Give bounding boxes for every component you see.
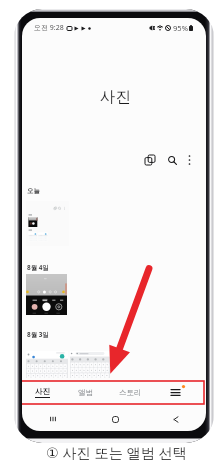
button[interactable]: Recents [46,412,60,426]
button[interactable] [70,351,110,378]
button[interactable] [26,201,69,246]
button[interactable]: More options [180,151,198,169]
staticText: 오늘 [27,187,40,195]
button[interactable]: Home [108,412,122,426]
button[interactable]: Search [163,151,181,169]
button[interactable]: Menu [156,381,197,404]
staticText: 오전 9:28 [34,23,64,33]
staticText: 8월 4일 [27,263,49,272]
button[interactable]: 스토리 [110,381,151,404]
button[interactable]: Create collage [141,151,159,169]
button[interactable]: Back [169,412,183,426]
button[interactable] [26,351,68,378]
staticText: ① 사진 또는 앨범 선택 [46,443,187,462]
staticText: 95% [173,23,188,33]
staticText: 스토리 [119,388,142,397]
staticText: 8월 3일 [27,330,49,339]
staticText: 사진 [100,87,131,107]
button[interactable]: 사진 [22,381,63,404]
button[interactable] [26,274,67,315]
staticText: 사진 [35,387,50,396]
staticText: 앨범 [78,388,93,397]
button[interactable]: 앨범 [65,381,106,404]
